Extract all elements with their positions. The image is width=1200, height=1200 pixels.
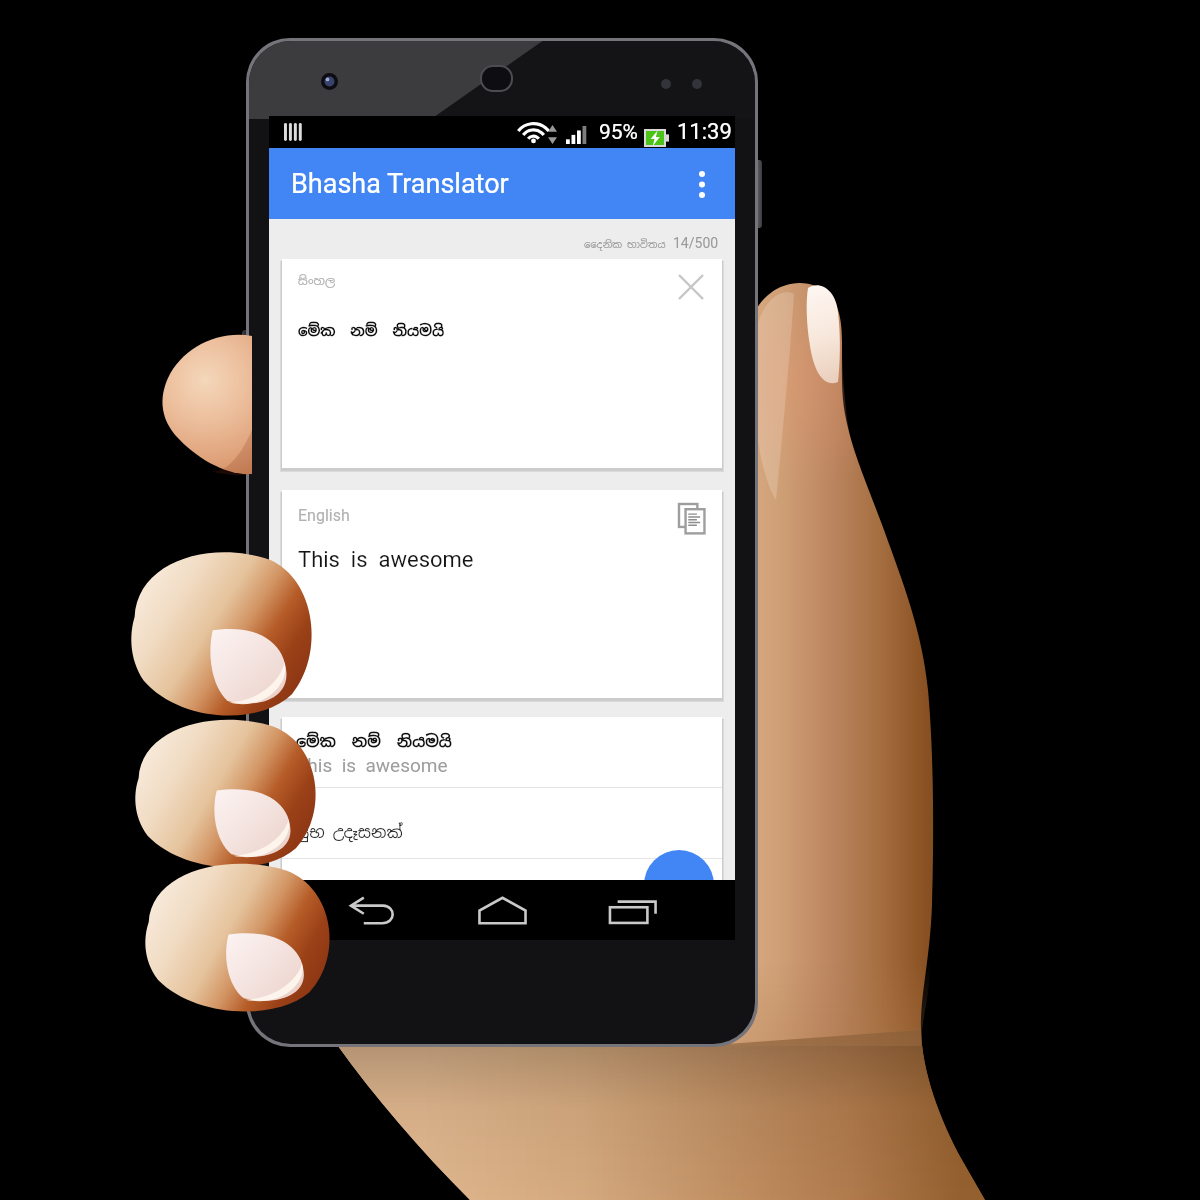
- staticText: මේක නම් නියමයි: [296, 731, 452, 752]
- button[interactable]: English: [282, 490, 722, 698]
- staticText: සිංහල: [298, 273, 336, 289]
- button[interactable]: Home: [460, 880, 544, 940]
- button[interactable]: Back: [331, 880, 415, 940]
- button[interactable]: සිංහල: [282, 259, 722, 468]
- staticText: 11:39: [677, 119, 732, 145]
- staticText: English: [298, 506, 350, 525]
- staticText: මේක නම් නියමයි: [298, 321, 445, 341]
- button[interactable]: More options: [681, 163, 723, 205]
- button[interactable]: Recent apps: [591, 880, 675, 940]
- button[interactable]: Translate: [644, 850, 714, 920]
- button[interactable]: Copy: [671, 498, 711, 538]
- staticText: සුභ උදෑසනක්: [296, 822, 403, 843]
- staticText: This is awesome: [296, 754, 448, 776]
- staticText: දෛනික භාවිතය: [584, 238, 666, 251]
- button[interactable]: මේක නම් නියමයි: [282, 717, 722, 880]
- staticText: This is awesome: [298, 547, 474, 573]
- button[interactable]: Clear text: [670, 266, 712, 308]
- staticText: 14/500: [673, 235, 719, 251]
- staticText: Bhasha Translator: [291, 168, 509, 200]
- staticText: 95%: [599, 120, 638, 145]
